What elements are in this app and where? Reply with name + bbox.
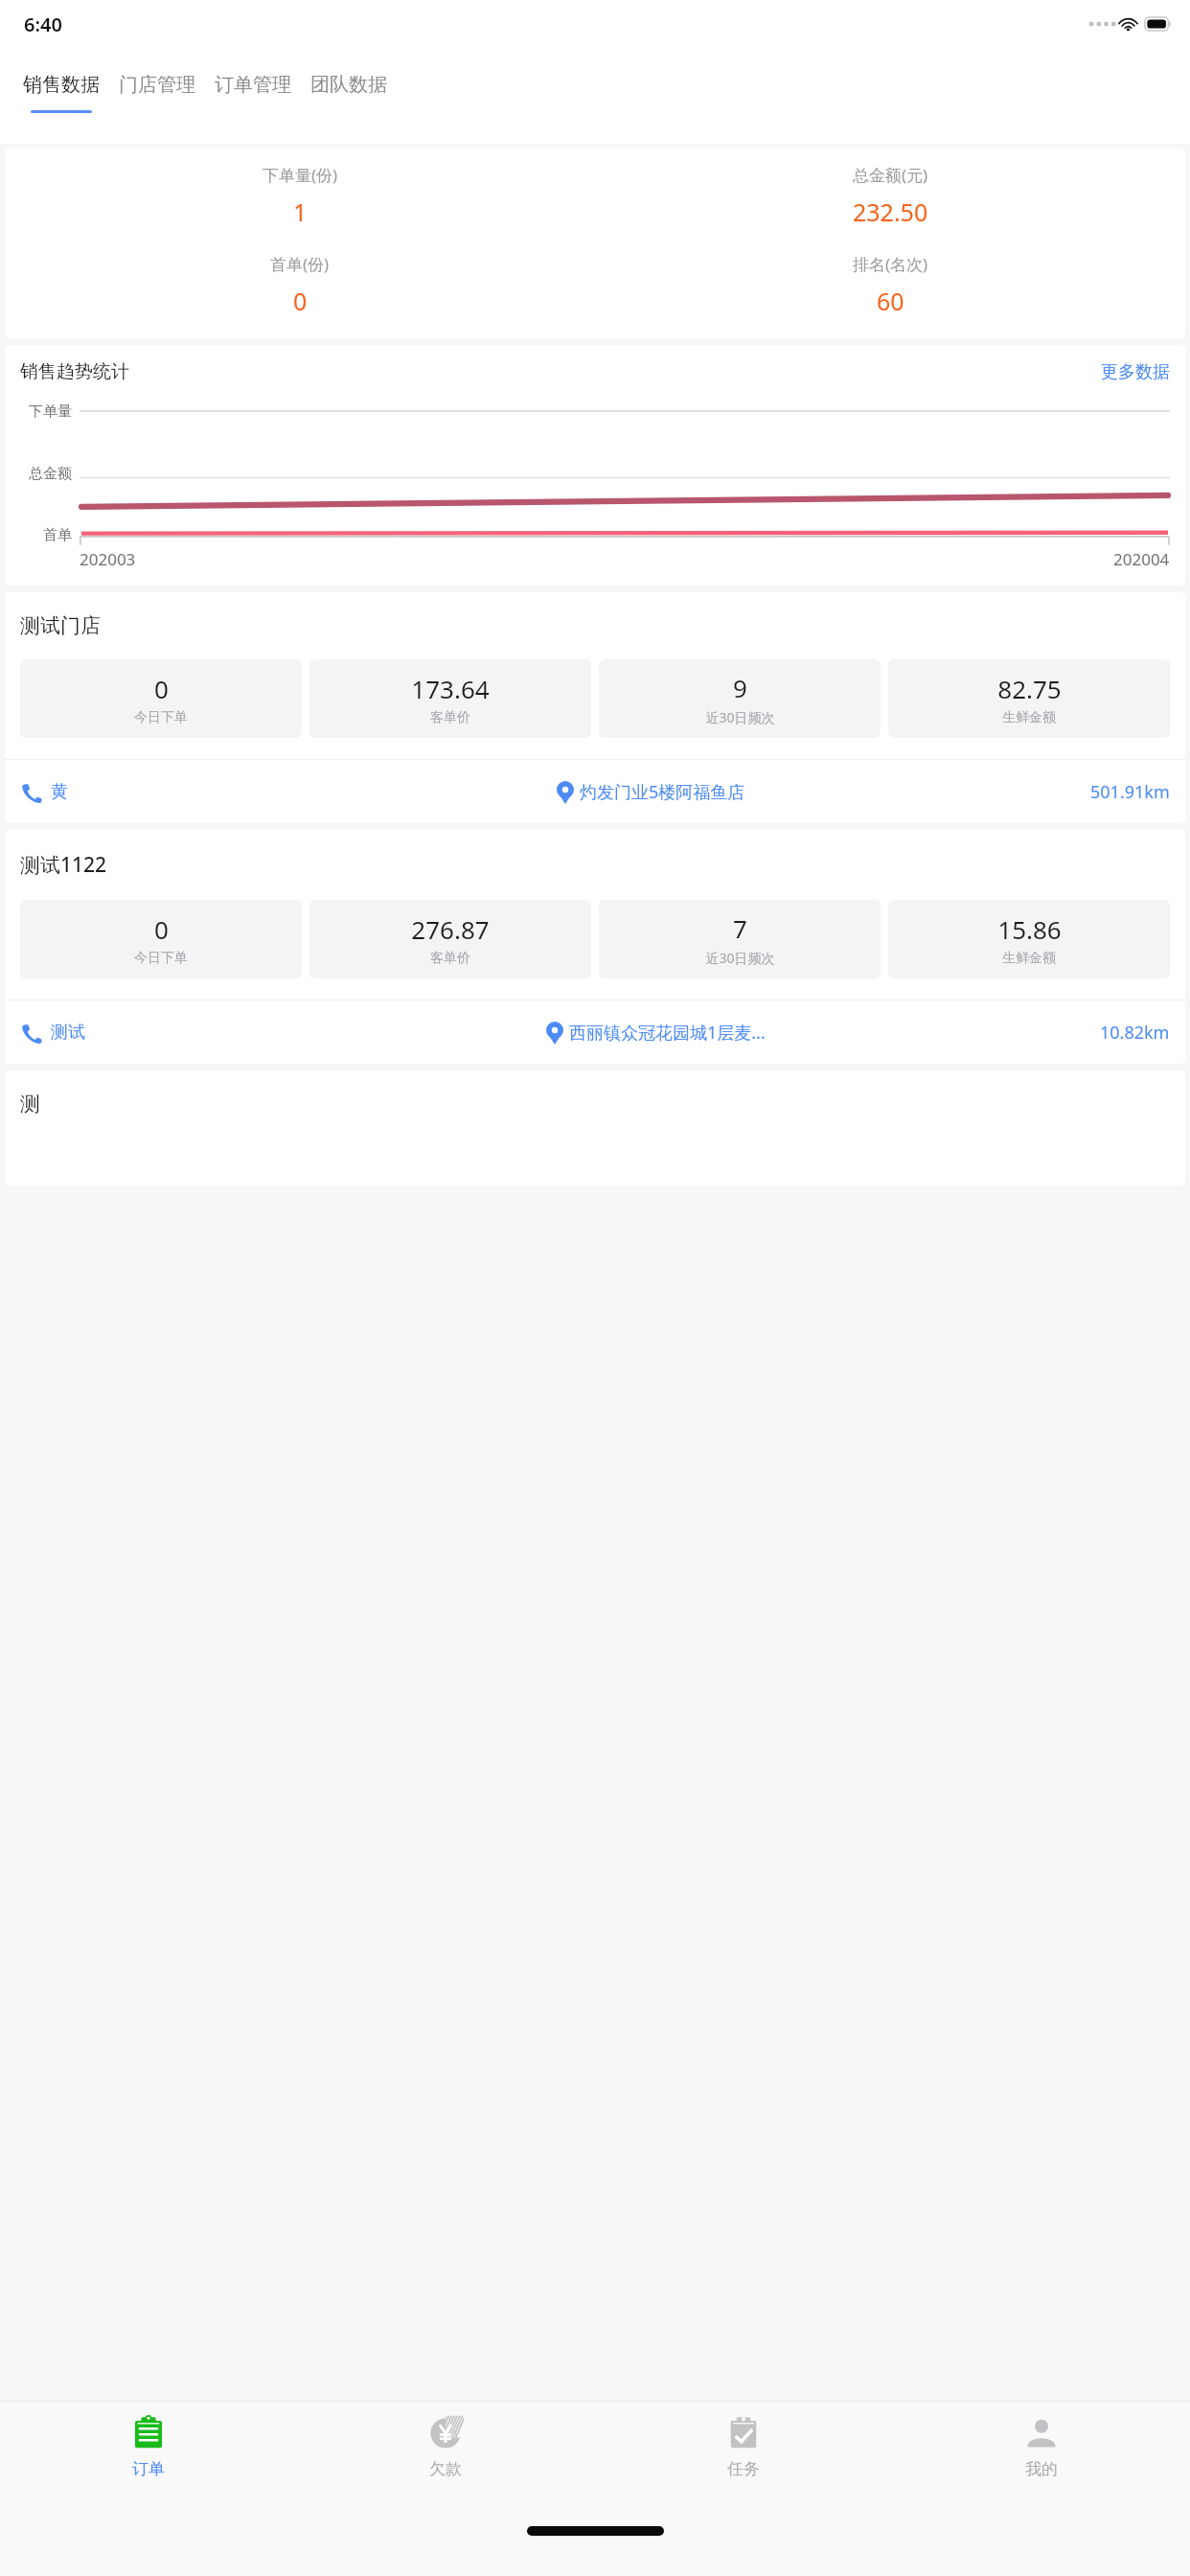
staticText: 测 bbox=[20, 1092, 40, 1116]
other: Location bbox=[546, 1022, 563, 1045]
staticText: 今日下单 bbox=[134, 950, 188, 967]
staticText: 0 bbox=[154, 672, 169, 705]
staticText: 60 bbox=[877, 285, 904, 317]
staticText: 501.91km bbox=[1090, 780, 1170, 804]
staticText: 测试门店 bbox=[20, 613, 101, 638]
staticText: 0 bbox=[154, 912, 169, 946]
staticText: 首单(份) bbox=[270, 253, 330, 275]
staticText: 0 bbox=[293, 285, 308, 317]
other: Debts bbox=[427, 2415, 464, 2451]
staticText: 生鲜金额 bbox=[1002, 950, 1056, 967]
staticText: 202004 bbox=[1113, 548, 1170, 570]
button[interactable]: 销售数据 bbox=[13, 48, 109, 113]
staticText: 1 bbox=[293, 195, 308, 228]
staticText: 欠款 bbox=[429, 2459, 462, 2479]
staticText: 近30日频次 bbox=[705, 708, 775, 726]
staticText: 总金额 bbox=[29, 465, 72, 483]
staticText: 9 bbox=[733, 671, 747, 704]
staticText: 首单 bbox=[43, 526, 72, 544]
staticText: 西丽镇众冠花园城1层麦... bbox=[569, 1021, 766, 1045]
button[interactable]: 团队数据 bbox=[301, 48, 397, 113]
staticText: 近30日频次 bbox=[705, 949, 775, 967]
button[interactable]: 0 bbox=[20, 900, 302, 978]
staticText: 我的 bbox=[1025, 2459, 1058, 2479]
button[interactable]: 更多数据 bbox=[1101, 361, 1170, 383]
button[interactable]: 15.86 bbox=[888, 900, 1170, 978]
staticText: 更多数据 bbox=[1101, 361, 1170, 383]
button[interactable]: 173.64 bbox=[309, 659, 591, 738]
staticText: 生鲜金额 bbox=[1002, 709, 1056, 726]
button[interactable]: Orders bbox=[0, 2401, 297, 2509]
staticText: 订单管理 bbox=[215, 73, 291, 97]
staticText: 今日下单 bbox=[134, 709, 188, 726]
staticText: 客单价 bbox=[430, 709, 470, 726]
button[interactable]: Location bbox=[557, 780, 745, 804]
button[interactable]: Call bbox=[20, 1022, 212, 1044]
staticText: 销售数据 bbox=[23, 73, 100, 97]
staticText: 测试 bbox=[51, 1022, 85, 1044]
button[interactable]: Tasks bbox=[594, 2401, 892, 2509]
button[interactable]: 测试门店 bbox=[5, 592, 1185, 823]
button[interactable]: 测试1122 bbox=[5, 830, 1185, 1064]
button[interactable]: 276.87 bbox=[309, 900, 591, 978]
button[interactable]: 82.75 bbox=[888, 659, 1170, 738]
staticText: 客单价 bbox=[430, 950, 470, 967]
staticText: 15.86 bbox=[997, 912, 1062, 946]
button[interactable]: Location bbox=[546, 1021, 766, 1045]
other: Call bbox=[20, 782, 41, 803]
button[interactable]: Call bbox=[20, 781, 212, 803]
other: Call bbox=[20, 1023, 41, 1044]
staticText: 202003 bbox=[80, 548, 136, 570]
other: Tasks bbox=[725, 2415, 762, 2451]
staticText: 灼发门业5楼阿福鱼店 bbox=[580, 780, 745, 804]
staticText: 订单 bbox=[132, 2459, 165, 2479]
staticText: 下单量 bbox=[29, 402, 72, 421]
button[interactable]: Profile bbox=[892, 2401, 1190, 2509]
staticText: 团队数据 bbox=[310, 73, 387, 97]
button[interactable]: 0 bbox=[20, 659, 302, 738]
staticText: 销售趋势统计 bbox=[20, 360, 129, 383]
staticText: 82.75 bbox=[997, 672, 1062, 705]
staticText: 276.87 bbox=[411, 912, 490, 946]
other: Profile bbox=[1023, 2415, 1060, 2451]
staticText: 7 bbox=[733, 911, 747, 945]
other: Orders bbox=[130, 2415, 167, 2451]
staticText: 门店管理 bbox=[119, 73, 195, 97]
staticText: 黄 bbox=[51, 781, 68, 803]
button[interactable]: 门店管理 bbox=[109, 48, 205, 113]
staticText: 173.64 bbox=[411, 672, 490, 705]
button[interactable]: Debts bbox=[297, 2401, 594, 2509]
button[interactable]: 9 bbox=[599, 659, 881, 738]
button[interactable]: 7 bbox=[599, 900, 881, 978]
staticText: 10.82km bbox=[1100, 1021, 1170, 1045]
other: Location bbox=[557, 781, 574, 804]
staticText: 总金额(元) bbox=[853, 164, 928, 186]
staticText: 任务 bbox=[727, 2459, 760, 2479]
staticText: 6:40 bbox=[24, 11, 62, 37]
staticText: 232.50 bbox=[853, 195, 928, 228]
button[interactable]: 测 bbox=[5, 1070, 1185, 1185]
staticText: 下单量(份) bbox=[263, 164, 338, 186]
staticText: 测试1122 bbox=[20, 851, 107, 879]
button[interactable]: 订单管理 bbox=[205, 48, 301, 113]
staticText: 排名(名次) bbox=[853, 253, 928, 275]
